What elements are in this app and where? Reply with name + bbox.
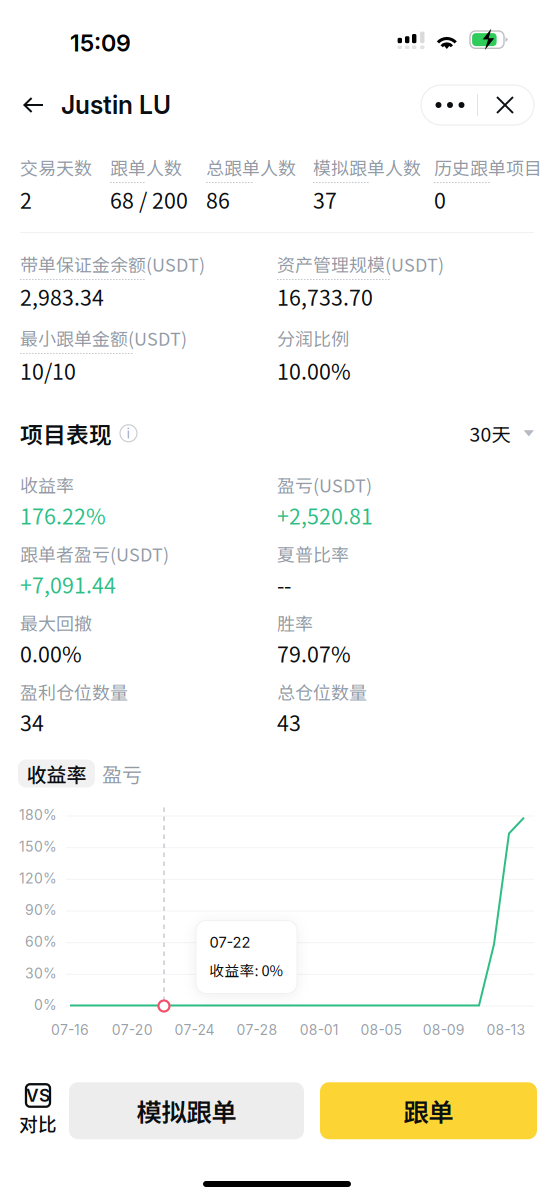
staticText: 2,983.34	[20, 281, 104, 312]
staticText: 16,733.70	[277, 281, 373, 312]
staticText: 180%	[19, 806, 57, 823]
staticText: 2	[20, 184, 32, 215]
button[interactable]: 跟单	[320, 1082, 537, 1139]
staticText: +7,091.44	[20, 569, 116, 600]
staticText: i	[126, 424, 130, 442]
staticText: 最小跟单金额(USDT)	[20, 325, 187, 351]
staticText: 对比	[19, 1110, 57, 1137]
staticText: 历史跟单项目	[434, 154, 542, 180]
staticText: 176.22%	[20, 500, 106, 531]
staticText: --	[277, 569, 291, 600]
staticText: 0%	[34, 996, 57, 1013]
staticText: 60%	[25, 933, 57, 950]
staticText: 120%	[19, 870, 57, 887]
staticText: 43	[277, 707, 301, 737]
staticText: 夏普比率	[277, 541, 349, 567]
staticText: 盈利仓位数量	[20, 678, 128, 705]
staticText: 08-09	[423, 1021, 465, 1038]
staticText: 最大回撤	[20, 610, 92, 636]
staticText: 项目表现	[20, 417, 112, 450]
staticText: 07-16	[51, 1021, 89, 1038]
staticText: 盈亏(USDT)	[277, 472, 372, 498]
staticText: 资产管理规模(USDT)	[277, 251, 444, 277]
button[interactable]: 盈亏	[95, 759, 149, 787]
staticText: 86	[206, 184, 230, 215]
staticText: 收益率	[20, 472, 74, 498]
staticText: 总跟单人数	[206, 154, 296, 180]
staticText: 盈亏	[102, 759, 142, 788]
staticText: 07-20	[112, 1021, 153, 1038]
staticText: 37	[313, 184, 337, 215]
staticText: 10/10	[20, 355, 76, 386]
staticText: 150%	[19, 838, 57, 855]
staticText: 总仓位数量	[277, 678, 367, 705]
staticText: 30%	[25, 965, 57, 982]
staticText: 08-13	[487, 1021, 526, 1038]
button[interactable]: Close	[478, 84, 532, 126]
button[interactable]: VS	[18, 1084, 58, 1137]
staticText: 跟单者盈亏(USDT)	[20, 541, 169, 567]
staticText: VS	[26, 1085, 50, 1106]
staticText: 07-22	[209, 933, 250, 951]
staticText: 30天	[470, 419, 511, 447]
staticText: Justin LU	[61, 90, 171, 120]
staticText: 0	[434, 184, 446, 215]
button[interactable]: 30天	[470, 419, 534, 447]
staticText: 模拟跟单人数	[313, 154, 421, 180]
staticText: 07-28	[236, 1021, 277, 1038]
button[interactable]: More	[423, 84, 477, 126]
staticText: 分润比例	[277, 325, 349, 351]
button[interactable]: Back	[0, 82, 60, 128]
staticText: 模拟跟单	[136, 1092, 236, 1129]
staticText: 胜率	[277, 610, 313, 636]
staticText: 90%	[25, 901, 57, 918]
staticText: 68 / 200	[110, 184, 188, 215]
staticText: 跟单人数	[110, 154, 182, 180]
staticText: 07-24	[175, 1021, 215, 1038]
staticText: 08-05	[360, 1021, 402, 1038]
button[interactable]: 模拟跟单	[69, 1082, 304, 1139]
staticText: 79.07%	[277, 638, 351, 669]
staticText: 带单保证金余额(USDT)	[20, 251, 205, 277]
staticText: +2,520.81	[277, 500, 373, 531]
staticText: 15:09	[70, 29, 131, 57]
staticText: 收益率: 0%	[209, 959, 283, 980]
staticText: 08-01	[300, 1021, 339, 1038]
staticText: 收益率	[26, 759, 86, 788]
staticText: 0.00%	[20, 638, 82, 669]
staticText: 跟单	[403, 1092, 453, 1129]
staticText: 交易天数	[20, 154, 92, 180]
staticText: 10.00%	[277, 355, 351, 386]
button[interactable]: 收益率	[18, 759, 95, 787]
staticText: 34	[20, 707, 44, 737]
